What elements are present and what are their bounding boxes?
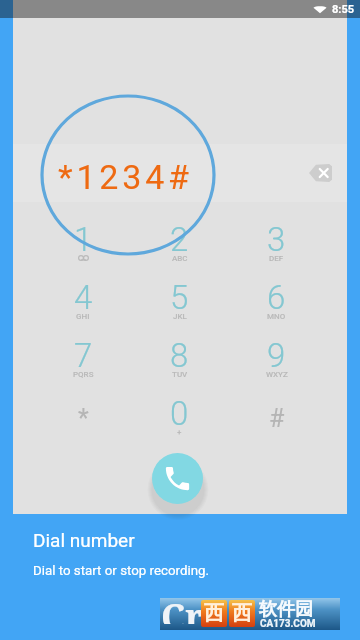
- staticText: 7: [74, 336, 93, 375]
- staticText: MNO: [267, 312, 286, 321]
- staticText: 西: [204, 601, 224, 626]
- staticText: GHI: [76, 312, 90, 321]
- staticText: 1: [74, 220, 93, 259]
- staticText: Dial number: [33, 529, 135, 551]
- staticText: WXYZ: [266, 370, 288, 379]
- staticText: 软件园: [259, 598, 313, 621]
- button[interactable]: 8: [131, 331, 228, 389]
- staticText: 8: [170, 336, 189, 375]
- staticText: 4: [74, 278, 93, 317]
- staticText: 西: [232, 601, 252, 626]
- button[interactable]: #: [228, 389, 325, 447]
- button[interactable]: 9: [228, 331, 325, 389]
- staticText: Dial to start or stop recording.: [33, 563, 209, 579]
- staticText: 2: [170, 220, 189, 259]
- button[interactable]: 3: [228, 215, 325, 273]
- button[interactable]: 6: [228, 273, 325, 331]
- staticText: CA173.COM: [260, 618, 316, 630]
- button[interactable]: Call: [152, 453, 203, 504]
- staticText: *: [78, 404, 89, 433]
- button[interactable]: 4: [35, 273, 131, 331]
- staticText: #: [269, 404, 285, 433]
- button[interactable]: 1: [35, 215, 131, 273]
- button[interactable]: 2: [131, 215, 228, 273]
- staticText: +: [177, 428, 182, 437]
- staticText: DEF: [269, 254, 284, 263]
- staticText: 0: [170, 394, 189, 433]
- staticText: *1234#: [58, 157, 193, 197]
- staticText: JKL: [173, 312, 187, 321]
- staticText: ABC: [172, 254, 188, 263]
- staticText: 3: [267, 220, 286, 259]
- staticText: 6: [267, 278, 286, 317]
- staticText: 9: [267, 336, 286, 375]
- button[interactable]: 7: [35, 331, 131, 389]
- staticText: TUV: [172, 370, 188, 379]
- button[interactable]: Backspace: [302, 155, 338, 191]
- staticText: PQRS: [73, 370, 94, 379]
- staticText: 8:55: [332, 3, 355, 16]
- button[interactable]: *: [35, 389, 131, 447]
- staticText: 5: [170, 278, 189, 317]
- button[interactable]: 5: [131, 273, 228, 331]
- staticText: Cr: [161, 592, 204, 624]
- button[interactable]: 0: [131, 389, 228, 447]
